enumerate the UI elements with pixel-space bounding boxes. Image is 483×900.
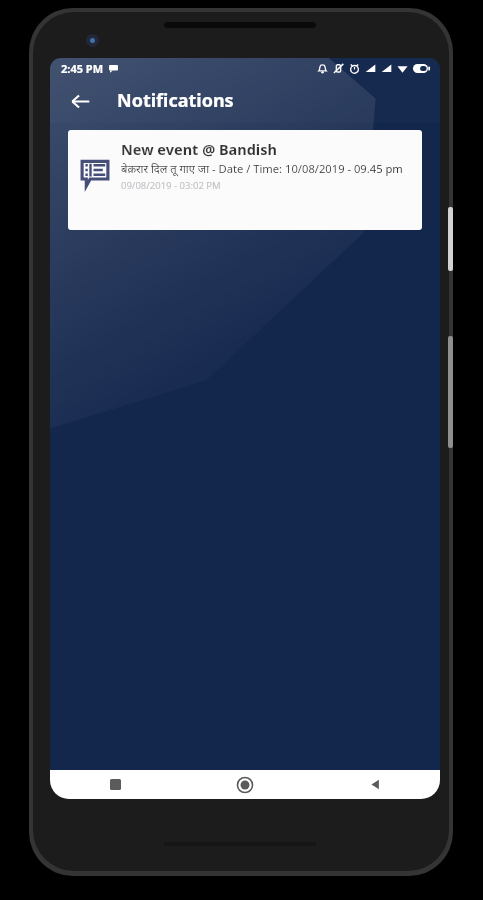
button[interactable]: New event @ Bandish (68, 130, 422, 230)
staticText: बेक़रार दिल तू गाए जा - Date / Time: 10/… (121, 161, 403, 176)
staticText: New event @ Bandish (121, 139, 277, 159)
button[interactable]: Back (310, 770, 440, 799)
staticText: Notifications (117, 88, 234, 113)
staticText: 09/08/2019 - 03:02 PM (121, 179, 221, 192)
button[interactable]: Back (60, 81, 100, 121)
button[interactable]: Recent apps (50, 770, 180, 799)
staticText: 2:45 PM (61, 61, 104, 76)
button[interactable]: Home (180, 770, 310, 799)
